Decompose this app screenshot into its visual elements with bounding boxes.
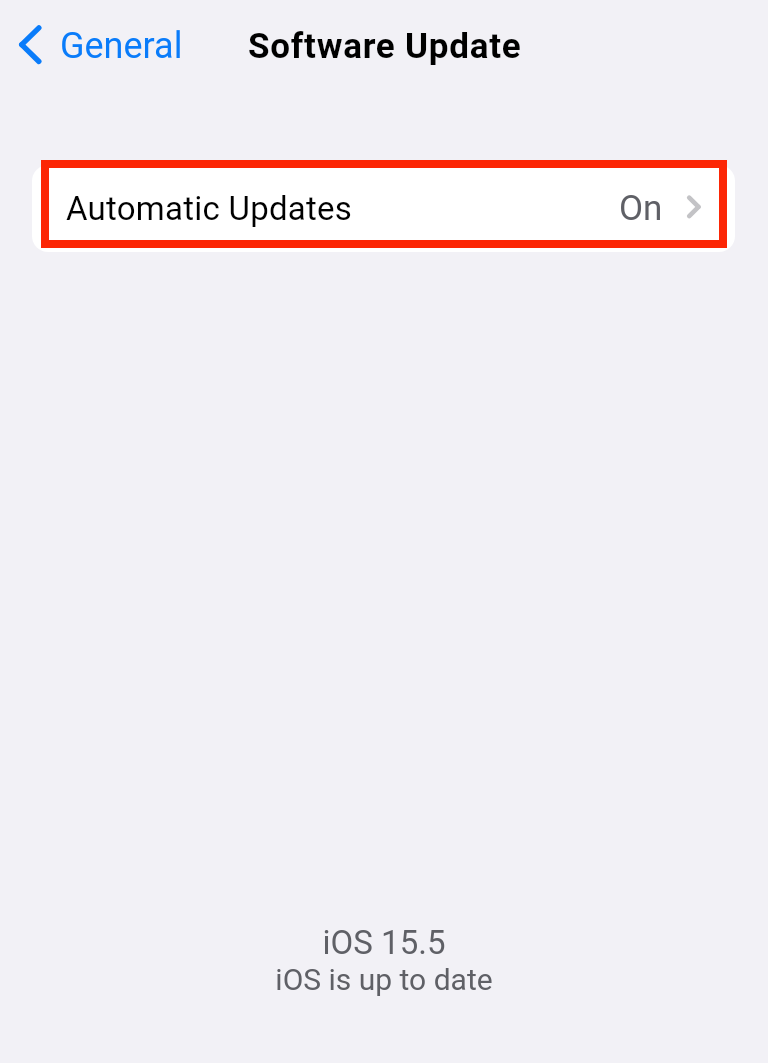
staticText: General xyxy=(60,25,183,67)
other: Open Automatic Updates xyxy=(684,192,704,222)
staticText: iOS 15.5 xyxy=(0,923,768,962)
button[interactable]: Back to General xyxy=(10,14,173,76)
staticText: Automatic Updates xyxy=(66,189,353,228)
staticText: Software Update xyxy=(248,26,522,67)
staticText: iOS is up to date xyxy=(0,962,768,997)
staticText: On xyxy=(619,188,663,229)
button[interactable]: Automatic Updates xyxy=(32,165,735,252)
